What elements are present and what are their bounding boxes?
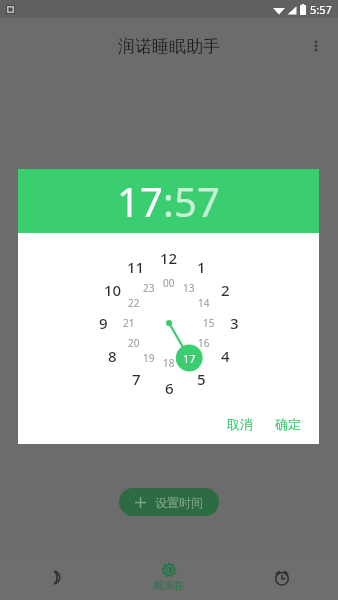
button[interactable]: Sleep [0,554,112,600]
button[interactable]: 取消 [219,410,261,438]
staticText: 3 [230,313,239,333]
button[interactable]: 17 [117,174,163,228]
staticText: 23 [143,281,155,295]
staticText: 17 [183,351,196,366]
staticText: 2 [221,280,230,300]
staticText: 5 [197,369,206,389]
staticText: 5:57 [310,2,332,17]
staticText: 润诺睡眠助手 [118,36,220,57]
staticText: 7 [132,369,141,389]
staticText: 4 [221,346,230,366]
staticText: 6 [165,378,174,398]
staticText: 设置时间 [155,495,203,510]
button[interactable]: 醒来在 [112,554,225,600]
staticText: 20 [128,336,140,350]
staticText: 1 [197,257,206,277]
button[interactable]: 设置时间 [119,488,219,516]
staticText: 00 [163,276,175,290]
staticText: 14 [198,296,210,310]
staticText: 21 [123,316,135,330]
staticText: 13 [183,281,195,295]
button[interactable]: 确定 [267,410,309,438]
staticText: 10 [104,280,122,300]
staticText: 9 [99,313,108,333]
button[interactable]: More options [298,28,334,64]
staticText: 醒来在 [154,579,184,592]
staticText: 8 [108,346,117,366]
staticText: 取消 [227,416,253,432]
staticText: : [163,174,174,228]
staticText: 确定 [275,416,301,432]
staticText: 19 [143,351,155,365]
staticText: 12 [160,248,178,268]
staticText: 15 [203,316,215,330]
staticText: 16 [198,336,210,350]
staticText: 18 [163,356,175,370]
staticText: 11 [127,257,145,277]
button[interactable]: Alarm [225,554,338,600]
button[interactable]: 57 [174,174,220,228]
staticText: 22 [128,296,140,310]
